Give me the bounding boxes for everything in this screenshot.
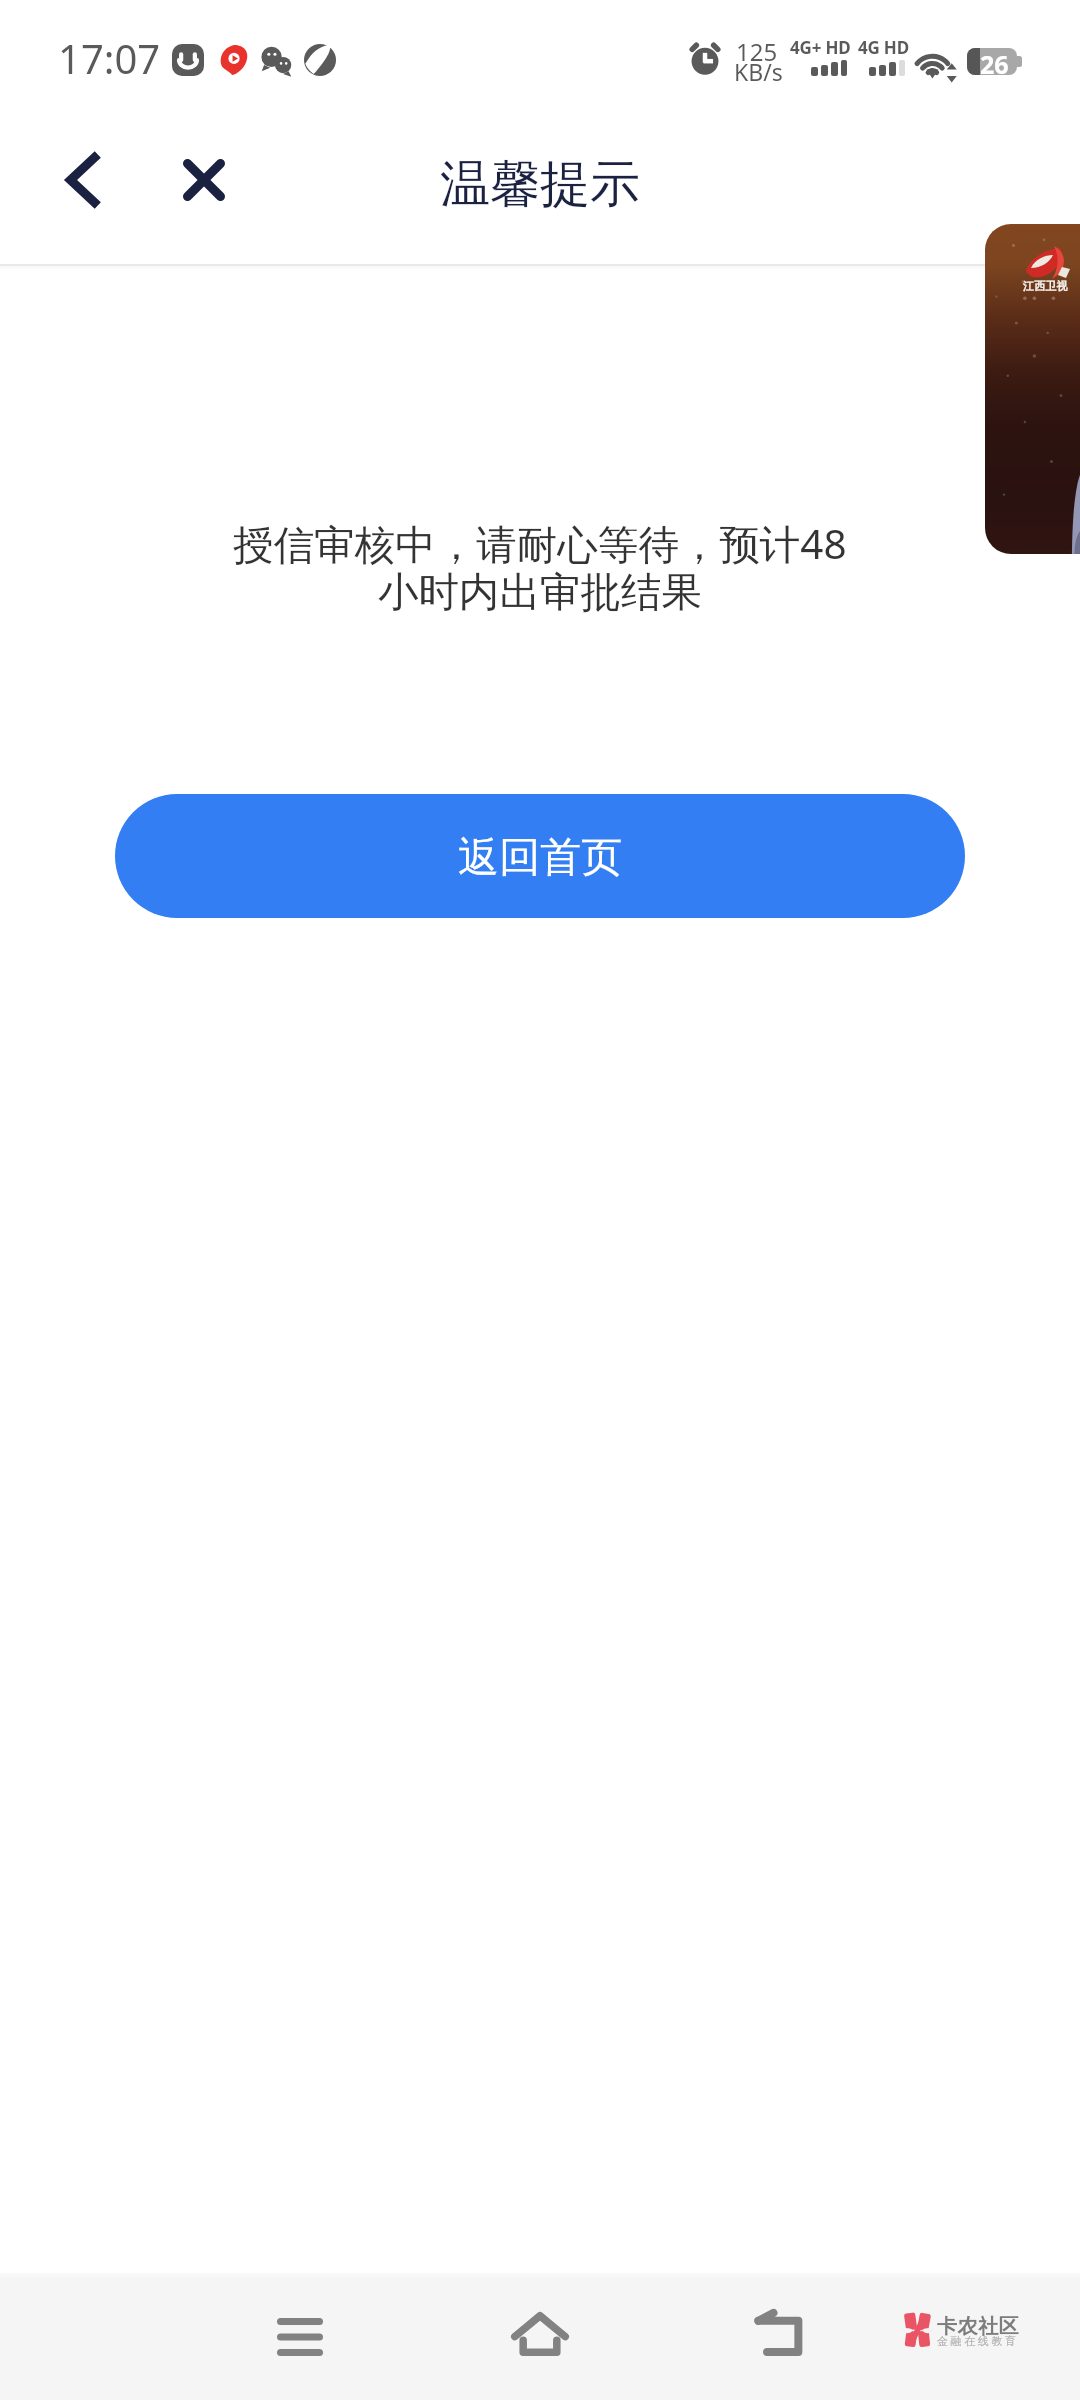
staticText: 江西卫视 xyxy=(1023,279,1068,293)
staticText: 26 xyxy=(980,48,1009,74)
staticText: 温馨提示 xyxy=(440,153,640,216)
button[interactable]: Close xyxy=(164,140,244,220)
button[interactable]: 返回首页 xyxy=(115,794,965,918)
staticText: KB/s xyxy=(734,56,783,87)
button[interactable]: Floating video player xyxy=(985,224,1080,554)
button[interactable]: Home xyxy=(480,2274,600,2394)
staticText: 授信审核中，请耐心等待，预计48 小时内出审批结果 xyxy=(0,516,1080,618)
button[interactable]: Back xyxy=(42,140,122,220)
staticText: 金融在线教育 xyxy=(937,2334,1019,2348)
staticText: 卡农社区 xyxy=(937,2314,1020,2339)
staticText: 125 xyxy=(736,35,778,68)
button[interactable]: Back xyxy=(720,2274,840,2394)
staticText: 4G HD xyxy=(858,36,909,59)
staticText: 4G+ HD xyxy=(790,36,851,59)
staticText: 返回首页 xyxy=(458,832,622,884)
button[interactable]: Recent apps xyxy=(240,2277,360,2397)
staticText: 17:07 xyxy=(58,31,161,85)
